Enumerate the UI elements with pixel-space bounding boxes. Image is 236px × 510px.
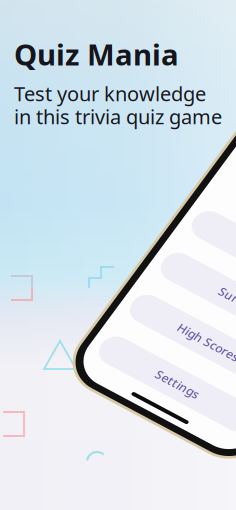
staticText: Quiz Mania — [14, 34, 179, 73]
staticText: Test your knowledge — [14, 80, 206, 107]
staticText: in this trivia quiz game — [14, 103, 222, 130]
